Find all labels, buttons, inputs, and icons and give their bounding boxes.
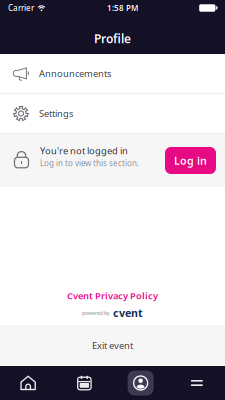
button[interactable]: Exit event xyxy=(0,325,225,366)
button[interactable]: Settings xyxy=(0,94,225,133)
staticText: Announcements xyxy=(39,67,111,80)
staticText: Carrier xyxy=(8,3,34,13)
staticText: Cvent Privacy Policy xyxy=(67,289,158,302)
staticText: Settings xyxy=(39,107,73,120)
staticText: You're not logged in xyxy=(40,144,128,157)
button[interactable]: Announcements xyxy=(0,54,225,93)
staticText: Log in to view this section. xyxy=(40,158,139,168)
staticText: 1:58 PM xyxy=(107,3,138,13)
button[interactable]: Schedule xyxy=(56,366,112,400)
button[interactable]: Log in xyxy=(165,147,216,174)
button[interactable]: More xyxy=(169,366,225,400)
staticText: Exit event xyxy=(92,339,133,352)
staticText: Log in xyxy=(174,153,207,168)
button[interactable]: Home xyxy=(0,366,56,400)
button[interactable]: Cvent Privacy Policy xyxy=(67,289,158,302)
button[interactable]: Profile xyxy=(112,366,169,400)
staticText: cvent xyxy=(113,306,143,320)
staticText: Profile xyxy=(94,30,131,46)
staticText: powered by xyxy=(82,309,110,316)
